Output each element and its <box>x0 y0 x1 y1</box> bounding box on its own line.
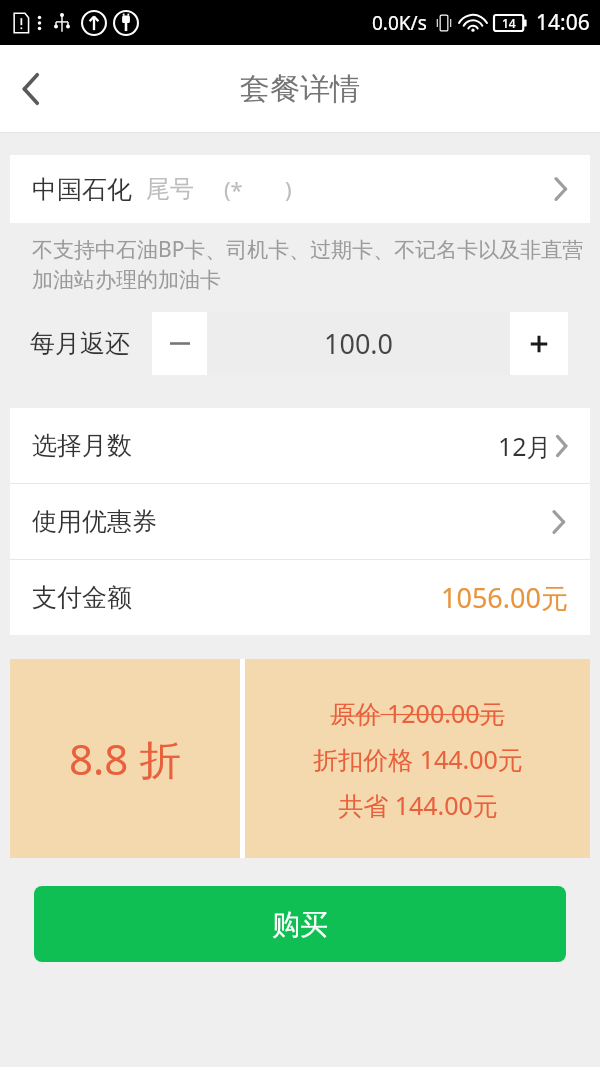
staticText: ) <box>285 174 292 204</box>
staticText: 14 <box>502 15 516 31</box>
staticText: 14:06 <box>536 8 590 37</box>
staticText: 购买 <box>272 907 328 942</box>
staticText: 选择月数 <box>32 430 132 461</box>
button[interactable]: 选择月数 <box>10 408 590 483</box>
staticText: 8.8 折 <box>69 730 182 787</box>
staticText: 尾号 <box>146 174 194 204</box>
staticText: (* <box>224 174 243 204</box>
staticText: 12月 <box>498 429 552 463</box>
staticText: 折扣价格 144.00元 <box>313 742 523 776</box>
staticText: 1056.00元 <box>441 579 568 616</box>
staticText: 共省 144.00元 <box>338 788 498 822</box>
staticText: 中国石化 <box>32 174 132 205</box>
staticText: 每月返还 <box>30 328 130 359</box>
button[interactable]: Increase <box>510 312 568 375</box>
button[interactable]: Decrease <box>152 312 207 375</box>
button[interactable]: 购买 <box>34 886 566 962</box>
button[interactable]: 使用优惠券 <box>10 484 590 559</box>
staticText: 套餐详情 <box>240 70 360 108</box>
staticText: 不支持中石油BP卡、司机卡、过期卡、不记名卡以及非直营加油站办理的加油卡 <box>32 235 592 294</box>
button[interactable]: 100.0 <box>207 312 510 375</box>
button[interactable]: 中国石化 <box>10 155 590 223</box>
staticText: 支付金额 <box>32 582 132 613</box>
staticText: 0.0K/s <box>372 10 427 36</box>
staticText: 使用优惠券 <box>32 506 157 537</box>
button[interactable]: Back <box>0 57 64 121</box>
staticText: 100.0 <box>324 325 394 362</box>
staticText: 原价 1200.00元 <box>330 696 505 730</box>
